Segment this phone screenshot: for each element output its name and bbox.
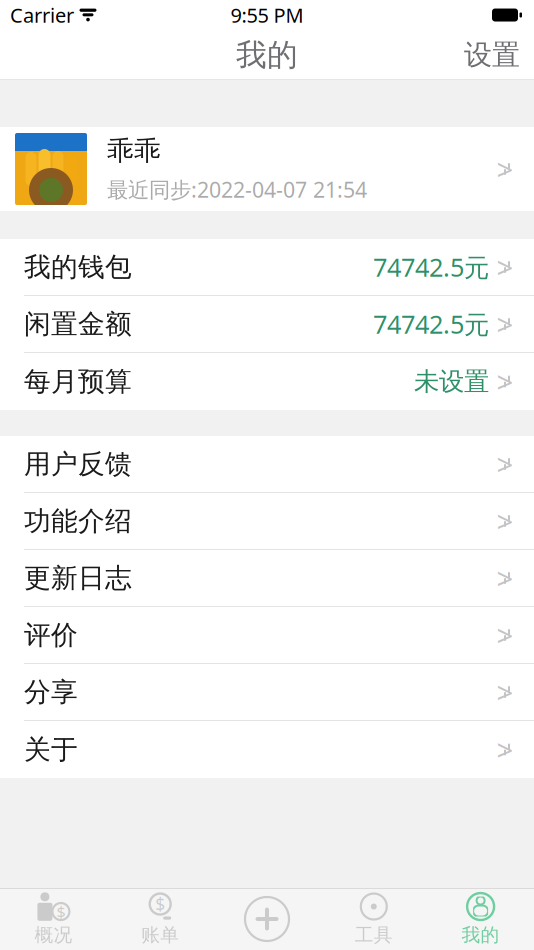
staticText: 我的钱包	[24, 251, 132, 283]
staticText: 分享	[24, 676, 78, 708]
staticText: 乖乖	[107, 134, 161, 167]
button[interactable]: 评价	[0, 607, 534, 664]
staticText: >	[496, 444, 513, 483]
staticText: 最近同步:2022-04-07 21:54	[107, 175, 367, 203]
button[interactable]: 更新日志	[0, 550, 534, 607]
button[interactable]: 乖乖	[0, 127, 534, 211]
button[interactable]: Add record	[214, 888, 320, 950]
button[interactable]: 我的	[427, 888, 534, 950]
staticText: >	[496, 362, 513, 401]
button[interactable]: $	[107, 888, 214, 950]
staticText: >	[496, 672, 513, 711]
staticText: 账单	[141, 923, 179, 946]
button[interactable]: 闲置金额	[0, 296, 534, 353]
staticText: >	[496, 615, 513, 654]
button[interactable]: 功能介绍	[0, 493, 534, 550]
staticText: >	[496, 149, 513, 188]
staticText: >	[496, 247, 513, 286]
staticText: 关于	[24, 733, 78, 766]
staticText: >	[496, 501, 513, 540]
button[interactable]: 设置	[450, 26, 534, 84]
staticText: $	[56, 901, 65, 922]
staticText: Carrier	[10, 2, 74, 28]
button[interactable]: 每月预算	[0, 353, 534, 410]
staticText: 74742.5元	[373, 250, 489, 284]
button[interactable]: 我的钱包	[0, 239, 534, 296]
button[interactable]: 工具	[320, 888, 427, 950]
staticText: 74742.5元	[373, 307, 489, 341]
staticText: $	[155, 892, 165, 915]
staticText: 概况	[34, 923, 72, 946]
staticText: 工具	[355, 923, 393, 946]
staticText: 未设置	[414, 366, 489, 397]
staticText: 设置	[464, 38, 520, 72]
staticText: >	[496, 558, 513, 597]
button[interactable]: $	[0, 888, 107, 950]
staticText: 功能介绍	[24, 505, 132, 537]
staticText: 我的	[462, 923, 500, 946]
staticText: 闲置金额	[24, 308, 132, 340]
staticText: 更新日志	[24, 562, 132, 594]
button[interactable]: 用户反馈	[0, 436, 534, 493]
staticText	[74, 2, 79, 28]
staticText: 用户反馈	[24, 448, 132, 480]
staticText: >	[496, 730, 513, 769]
staticText: 9:55 PM	[230, 2, 303, 28]
button[interactable]: 分享	[0, 664, 534, 721]
staticText: 评价	[24, 619, 78, 651]
staticText: 我的	[236, 36, 298, 74]
staticText: >	[496, 304, 513, 343]
staticText: 每月预算	[24, 365, 132, 398]
button[interactable]: 关于	[0, 721, 534, 778]
